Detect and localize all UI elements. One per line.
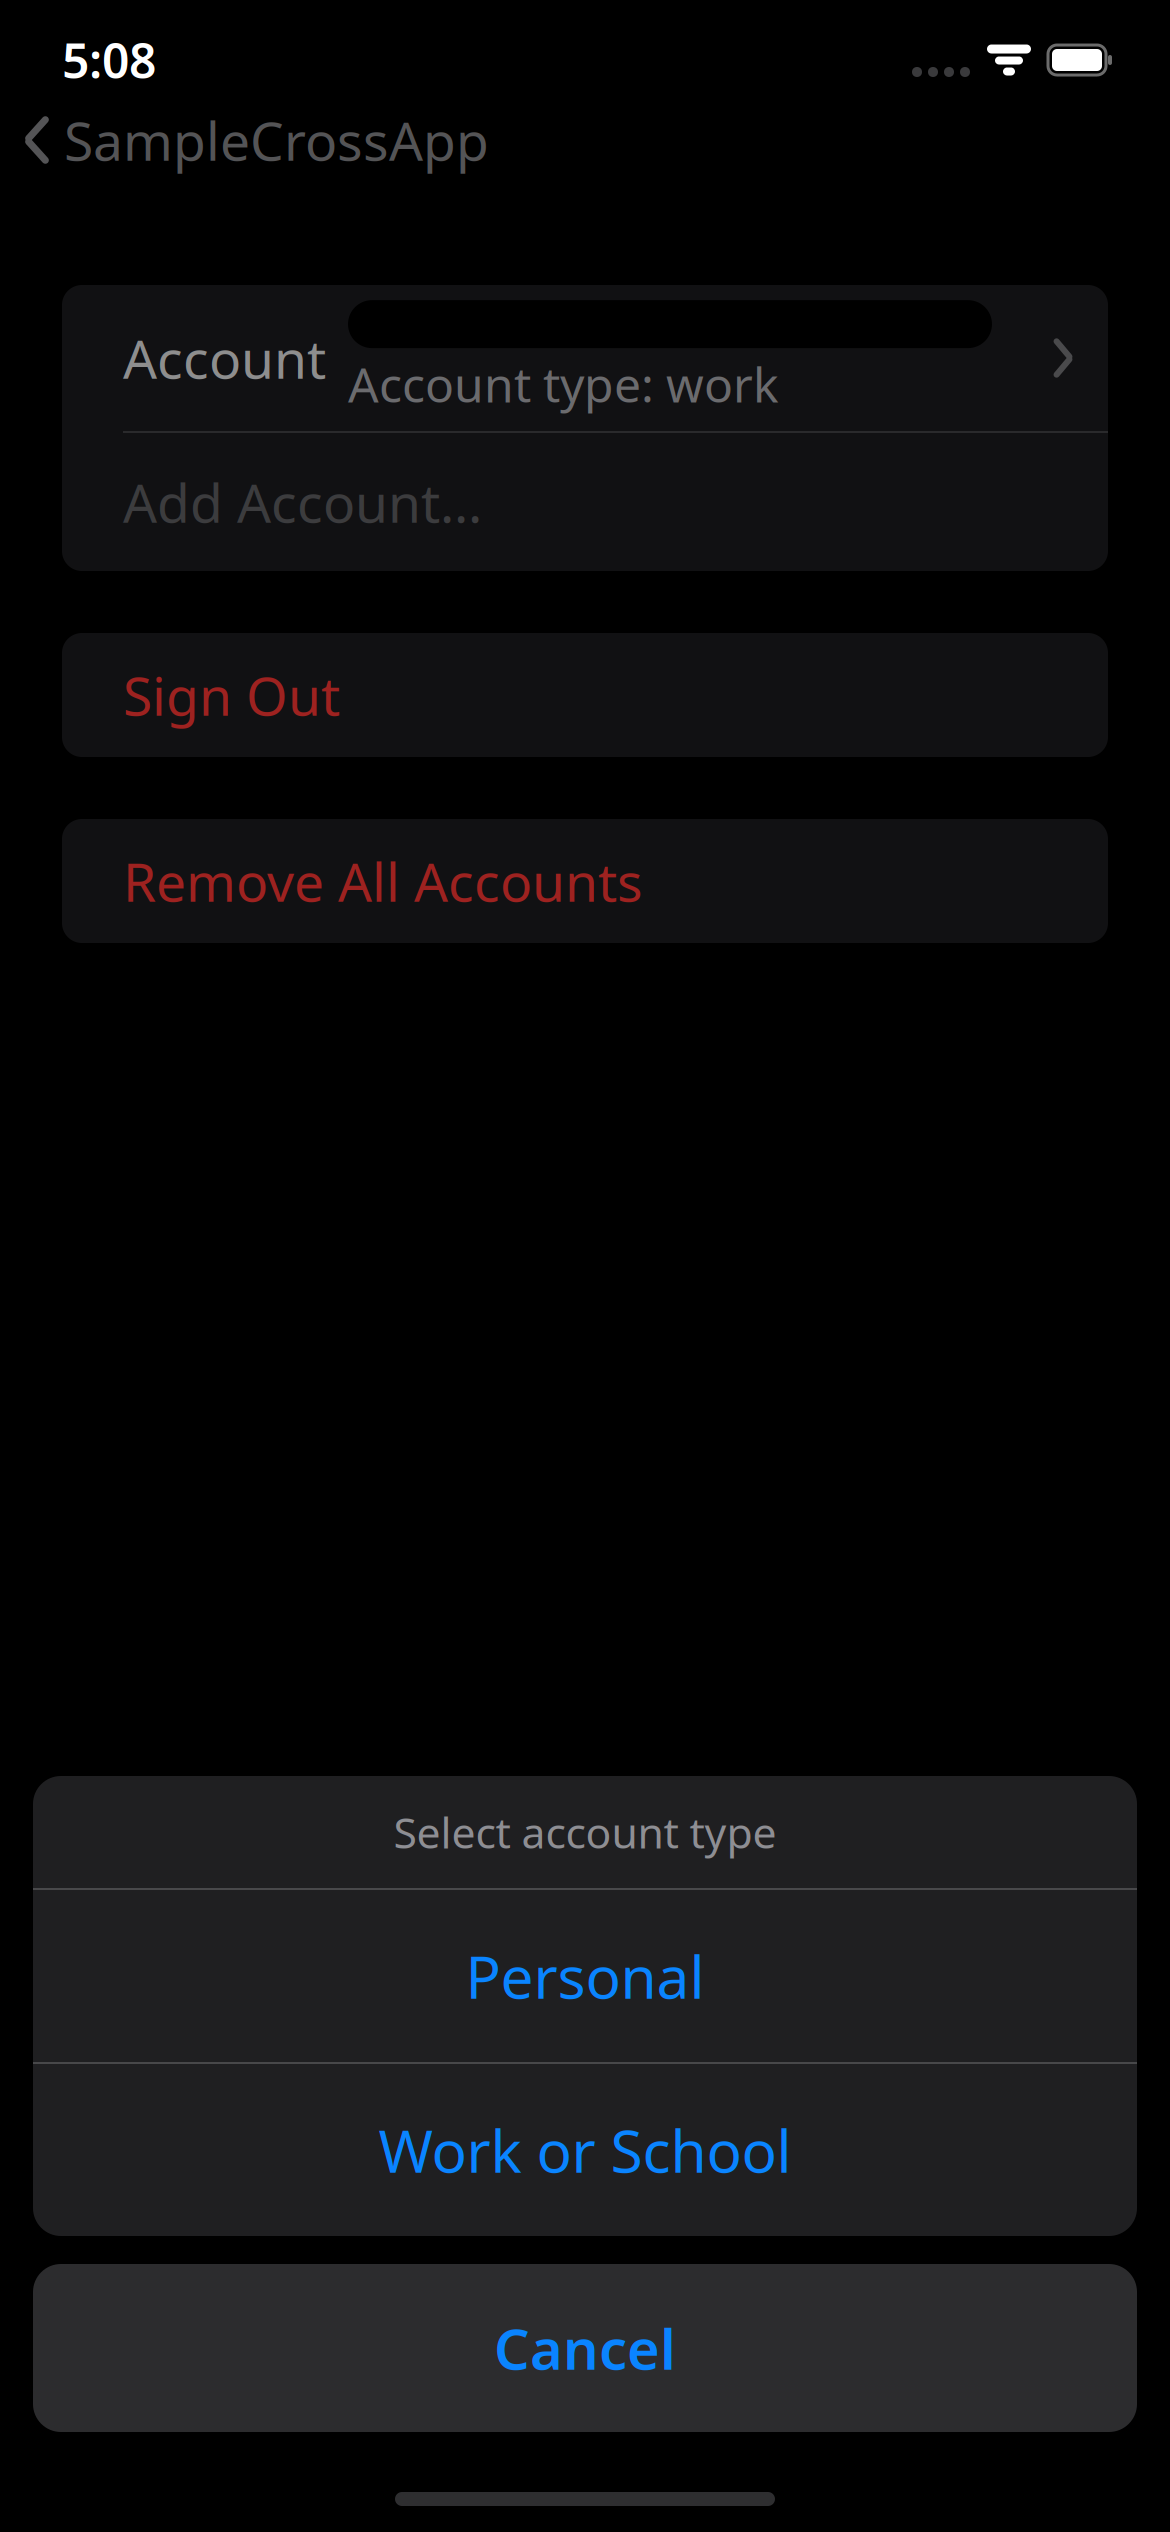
button[interactable]: Personal: [33, 1890, 1137, 2062]
staticText: SampleCrossApp: [64, 105, 489, 175]
staticText: Work or School: [378, 2111, 791, 2189]
staticText: Remove All Accounts: [123, 846, 643, 916]
staticText: Account type: work: [348, 352, 779, 416]
button[interactable]: Sign Out: [62, 633, 1108, 757]
staticText: Add Account...: [123, 467, 482, 537]
staticText: 5:08: [62, 28, 156, 92]
staticText: Personal: [465, 1937, 704, 2015]
staticText: Account: [123, 323, 326, 393]
button[interactable]: Cancel: [33, 2264, 1137, 2432]
button[interactable]: Add Account...: [62, 433, 1108, 571]
button[interactable]: Remove All Accounts: [62, 819, 1108, 943]
staticText: Sign Out: [123, 660, 340, 730]
button[interactable]: SampleCrossApp: [0, 91, 509, 189]
button[interactable]: Account: [62, 285, 1108, 431]
staticText: Cancel: [494, 2311, 676, 2385]
staticText: Select account type: [393, 1804, 776, 1860]
button[interactable]: Work or School: [33, 2064, 1137, 2236]
